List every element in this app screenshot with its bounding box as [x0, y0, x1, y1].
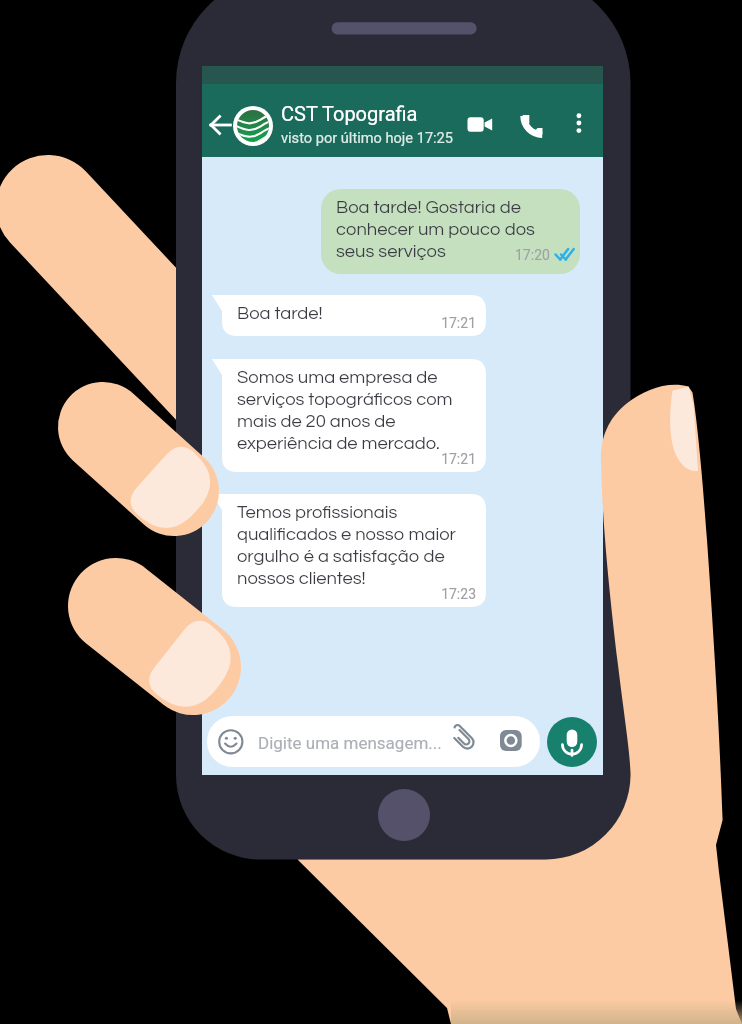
- staticText: visto por último hoje 17:25: [281, 129, 454, 146]
- staticText: 17:20: [515, 247, 550, 263]
- staticText: Boa tarde!: [237, 304, 323, 323]
- staticText: Temos profissionais qualificados e nosso…: [237, 503, 456, 588]
- button[interactable]: Digite uma mensagem...: [207, 716, 540, 767]
- staticText: 17:23: [212, 586, 476, 602]
- staticText: 17:21: [212, 315, 476, 331]
- staticText: Boa tarde! Gostaria de conhecer um pouco…: [336, 198, 535, 261]
- button[interactable]: Call: [518, 111, 548, 141]
- button[interactable]: Record voice message: [547, 717, 597, 767]
- button[interactable]: More options: [568, 111, 592, 139]
- button[interactable]: Camera: [500, 730, 522, 751]
- button[interactable]: Back: [202, 84, 603, 157]
- button[interactable]: Video call: [461, 110, 497, 140]
- staticText: Digite uma mensagem...: [258, 733, 442, 753]
- staticText: CST Topografia: [281, 102, 418, 125]
- button[interactable]: Boa tarde! Gostaria de conhecer um pouco…: [321, 189, 580, 274]
- button[interactable]: Attach file: [452, 727, 478, 753]
- staticText: Somos uma empresa de serviços topográfic…: [237, 368, 453, 453]
- button[interactable]: Back: [208, 112, 232, 138]
- staticText: 17:21: [212, 451, 476, 467]
